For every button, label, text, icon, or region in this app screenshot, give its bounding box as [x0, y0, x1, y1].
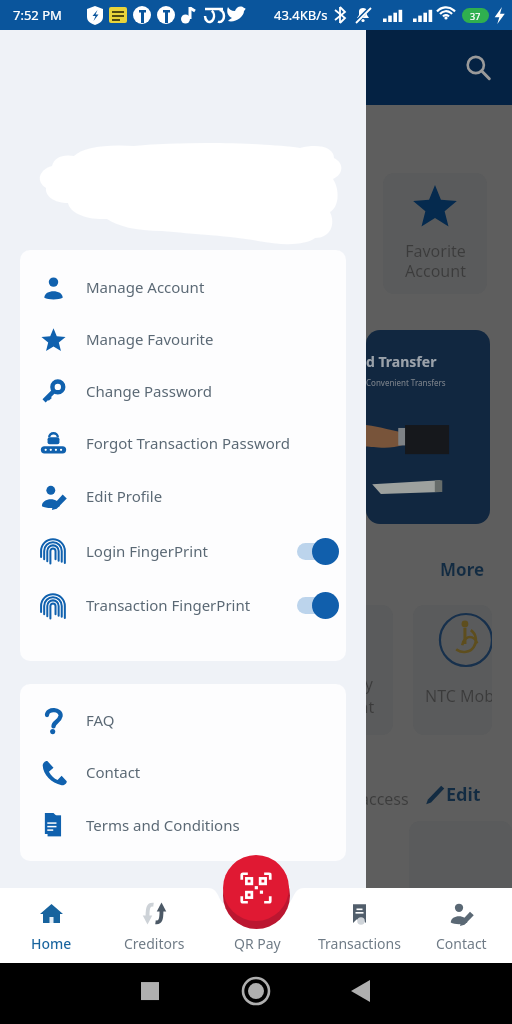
button[interactable]: Login FingerPrint [20, 523, 346, 578]
staticText: Convenient Transfers [366, 377, 446, 388]
staticText: 43.4KB/s [274, 6, 328, 24]
staticText: Creditors [124, 934, 185, 953]
button[interactable]: QR Pay [206, 888, 308, 963]
button[interactable]: Transactions [308, 888, 410, 963]
staticText: 37 [470, 10, 481, 22]
button[interactable]: More [440, 558, 485, 580]
button[interactable]: Edit Profile [20, 469, 346, 523]
staticText: Manage Favourite [86, 329, 214, 349]
staticText: Fonepay Payment [289, 673, 393, 718]
staticText: Transactions [318, 934, 401, 953]
staticText: Home [31, 934, 72, 953]
button[interactable]: FAQ [20, 694, 346, 746]
staticText: Contact [436, 934, 487, 953]
staticText: NTC Mob [425, 685, 492, 707]
staticText: QR Pay [234, 934, 281, 953]
staticText: d Transfer [366, 352, 437, 371]
button[interactable]: Terms and Conditions [20, 798, 346, 851]
button[interactable]: Manage Account [20, 261, 346, 313]
staticText: FAQ [86, 710, 115, 730]
staticText: Transaction FingerPrint [86, 595, 251, 615]
staticText: Manage Account [86, 277, 205, 297]
button[interactable]: Contact [410, 888, 512, 963]
staticText: Edit [446, 782, 481, 807]
staticText: 7:52 PM [13, 6, 62, 24]
button[interactable]: Transaction FingerPrint [20, 578, 346, 632]
button[interactable]: Contact [20, 746, 346, 798]
staticText: Login FingerPrint [86, 541, 208, 561]
button[interactable]: QR Pay Scan [223, 855, 289, 921]
button[interactable]: Toggle Login FingerPrint [295, 536, 341, 566]
button[interactable]: Search [458, 48, 498, 88]
staticText: Favorite Account [405, 240, 466, 281]
button[interactable] [409, 821, 512, 941]
button[interactable]: Edit [424, 782, 481, 807]
button[interactable]: d Transfer [366, 330, 490, 524]
button[interactable]: NTC Mob [413, 605, 492, 735]
button[interactable]: Fonepay Payment [289, 605, 393, 735]
staticText: access [360, 788, 409, 810]
button[interactable]: Creditors [103, 888, 206, 963]
button[interactable]: Forgot Transaction Password [20, 417, 346, 469]
button[interactable]: Manage Favourite [20, 313, 346, 365]
button[interactable]: Change Password [20, 365, 346, 417]
button[interactable]: Home [0, 888, 103, 963]
staticText: Forgot Transaction Password [86, 433, 290, 453]
button[interactable]: Favorite Account [383, 173, 487, 294]
button[interactable]: Toggle Transaction FingerPrint [295, 590, 341, 620]
staticText: Edit Profile [86, 486, 163, 506]
staticText: Contact [86, 762, 141, 782]
staticText: Change Password [86, 381, 212, 401]
staticText: Terms and Conditions [86, 815, 240, 835]
